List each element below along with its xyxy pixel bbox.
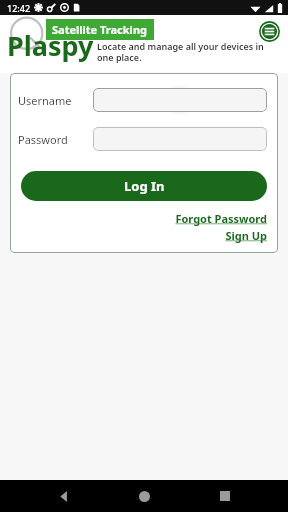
staticText: Locate and manage all your devices in on… (97, 40, 267, 64)
staticText: Forgot Password (175, 211, 267, 226)
button[interactable]: Satellite Tracking (52, 22, 148, 37)
button[interactable]: Log In (21, 171, 267, 201)
staticText: Plaspy (7, 27, 94, 64)
staticText: Username (18, 93, 90, 108)
button[interactable]: Recents (208, 480, 242, 512)
staticText: Password (18, 132, 90, 147)
button[interactable]: Back (47, 480, 81, 512)
button[interactable] (93, 127, 267, 151)
button[interactable]: Menu (259, 21, 280, 42)
button[interactable] (93, 88, 267, 112)
staticText: Log In (124, 177, 165, 195)
button[interactable]: Sign Up (225, 228, 267, 243)
staticText: 12:42 (7, 2, 31, 14)
staticText: Satellite Tracking (52, 22, 148, 37)
button[interactable]: Forgot Password (175, 211, 267, 226)
button[interactable]: Home (127, 480, 161, 512)
staticText: Sign Up (225, 228, 267, 243)
